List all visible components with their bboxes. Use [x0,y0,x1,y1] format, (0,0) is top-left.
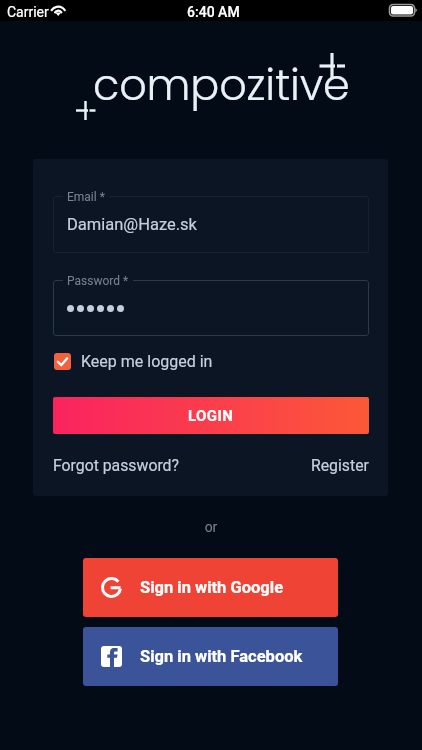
button[interactable]: Google [83,558,338,617]
button[interactable]: Register [311,456,369,475]
staticText: Email * [67,190,105,204]
staticText: LOGIN [188,407,234,425]
staticText: Sign in with Google [140,578,284,597]
staticText: Password * [67,274,129,288]
staticText: Carrier [7,4,49,20]
staticText: Damian@Haze.sk [67,215,197,234]
button[interactable]: Keep me logged in [54,347,213,375]
button[interactable]: Facebook [83,627,338,686]
staticText: 6:40 AM [187,4,240,20]
other: Facebook [101,646,122,667]
other: Google [101,577,122,598]
staticText: Sign in with Facebook [140,647,303,666]
button[interactable]: Forgot password? [53,456,179,475]
staticText: Keep me logged in [81,352,213,371]
button[interactable]: LOGIN [53,397,369,434]
staticText: compozitive [93,55,350,115]
staticText: or [0,519,422,535]
